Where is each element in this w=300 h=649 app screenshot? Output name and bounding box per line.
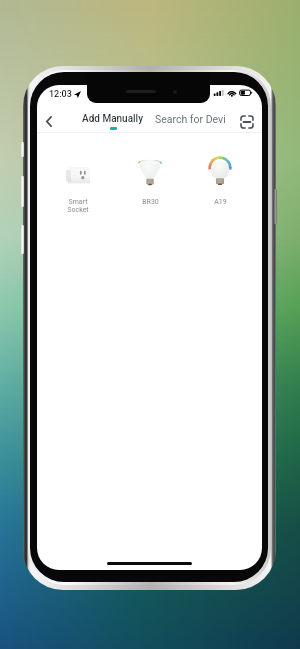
button[interactable]: BR30 (124, 153, 176, 218)
staticText: Smart Socket (67, 198, 89, 214)
staticText: A19 (214, 198, 227, 206)
button[interactable]: Search for Devi (151, 111, 230, 127)
button[interactable]: A19 (194, 153, 246, 218)
staticText: Add Manually (82, 113, 144, 125)
button[interactable]: Back (40, 113, 57, 130)
button[interactable]: Scan QR code (237, 112, 257, 132)
button[interactable]: Add Manually (78, 111, 148, 132)
staticText: 12:03 (49, 89, 72, 100)
button[interactable]: Smart Socket (52, 153, 104, 218)
staticText: BR30 (142, 198, 159, 206)
staticText: Search for Devi (155, 113, 226, 125)
